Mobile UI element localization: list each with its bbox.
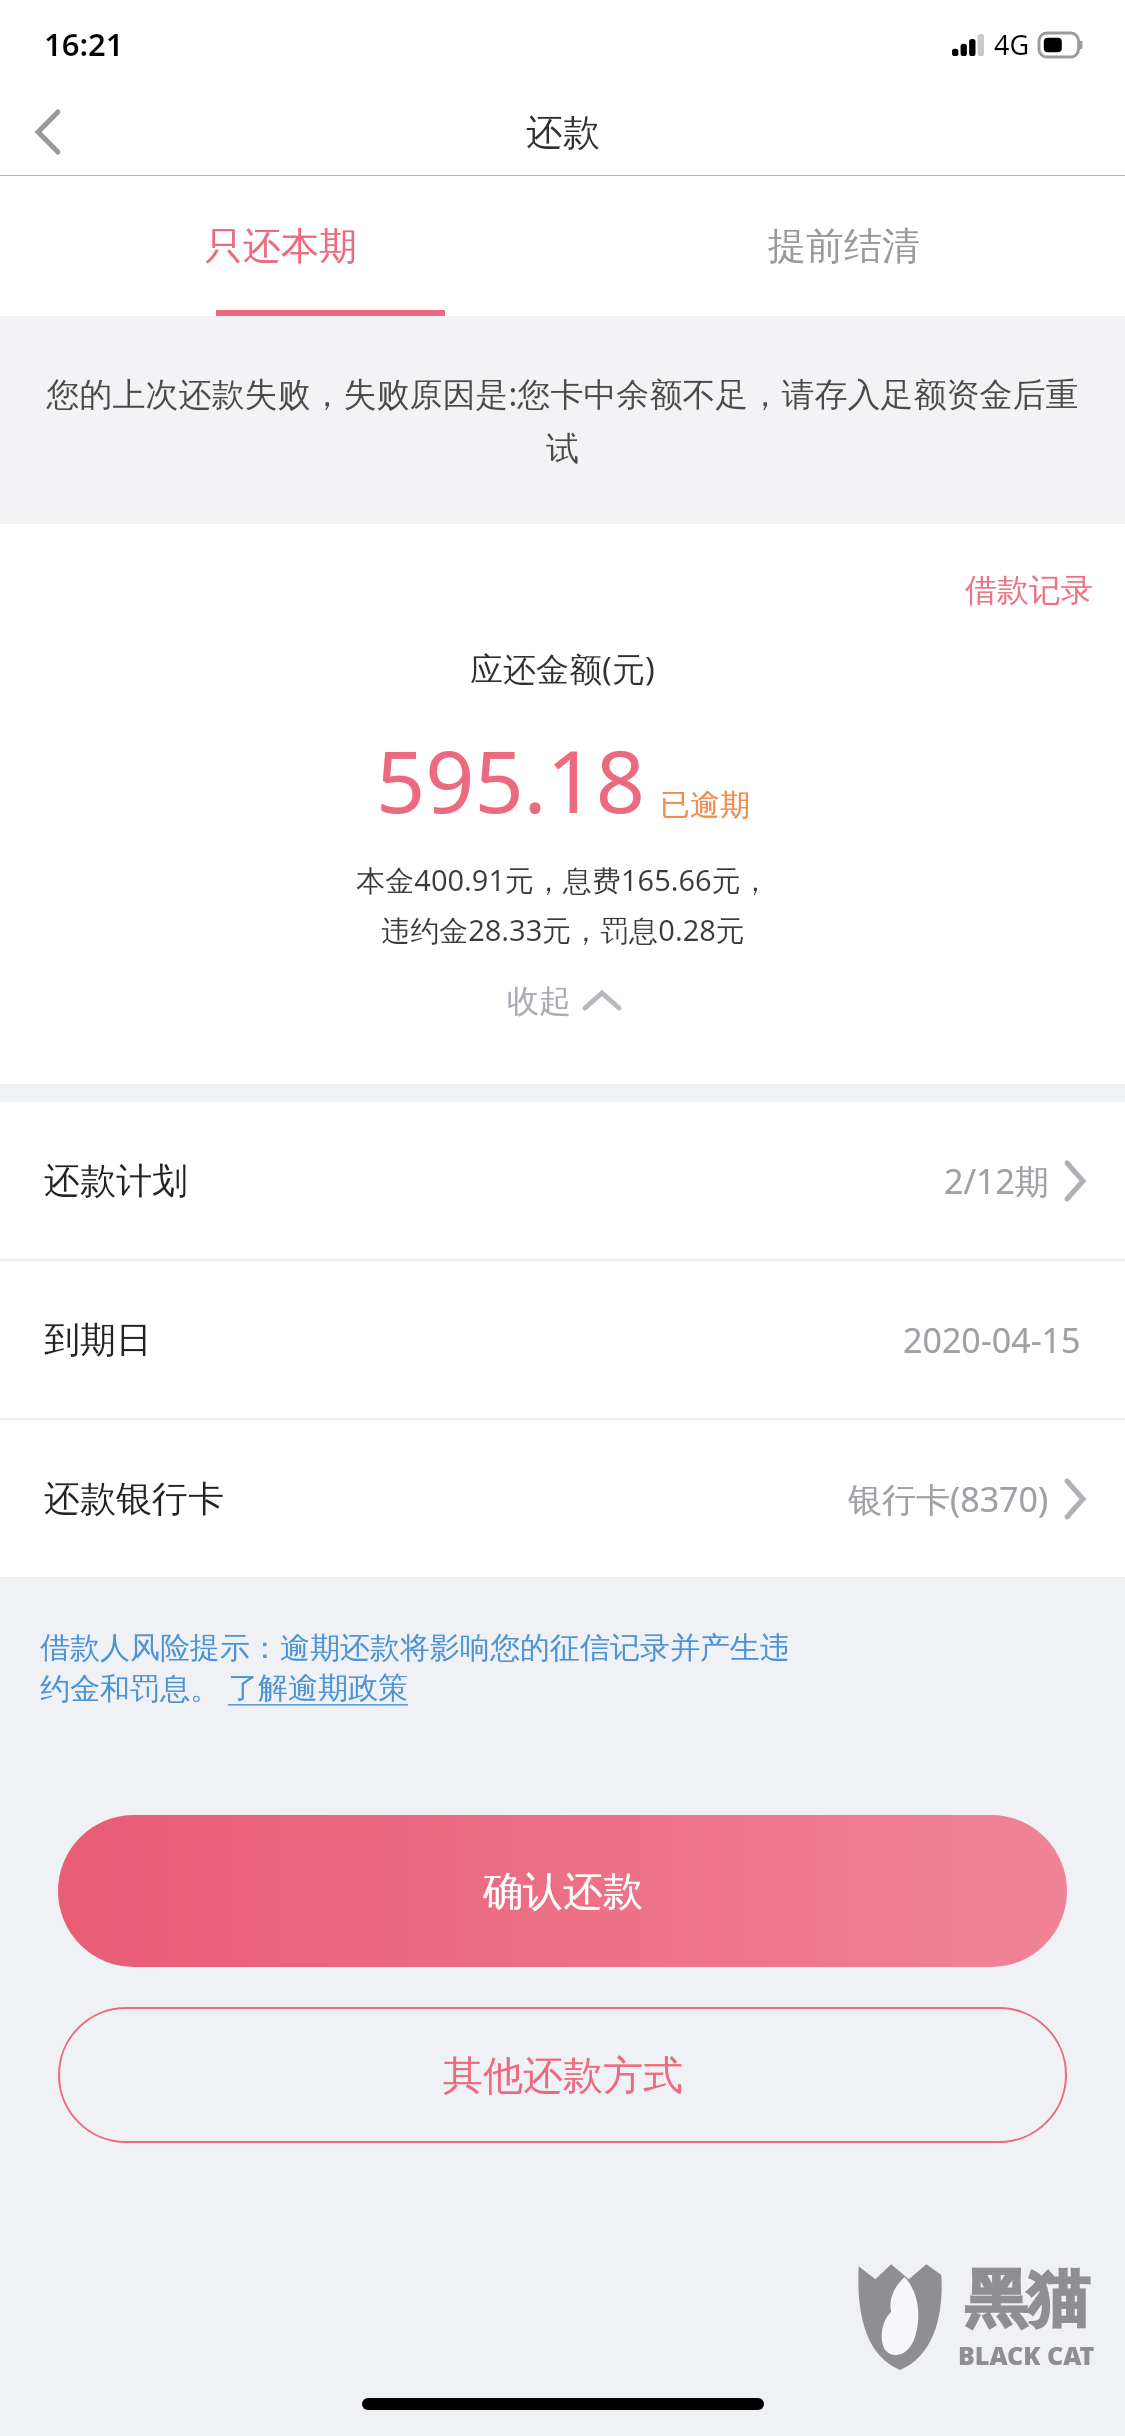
staticText: 已逾期	[660, 786, 750, 824]
staticText: 只还本期	[205, 222, 357, 270]
button[interactable]: 还款银行卡	[0, 1420, 1125, 1577]
staticText: 确认还款	[483, 1866, 643, 1916]
button[interactable]: 还款计划	[0, 1102, 1125, 1259]
staticText: 借款人风险提示：逾期还款将影响您的征信记录并产生违	[40, 1629, 790, 1667]
staticText: 其他还款方式	[443, 2050, 683, 2100]
staticText: 黑猫	[965, 2260, 1089, 2338]
button[interactable]: 了解逾期政策	[228, 1669, 408, 1707]
staticText: 16:21	[44, 23, 124, 65]
staticText: 2/12期	[944, 1158, 1049, 1204]
staticText: 了解逾期政策	[228, 1669, 408, 1707]
staticText: 还款计划	[44, 1158, 188, 1203]
button[interactable]: 提前结清	[562, 176, 1125, 316]
staticText: 2020-04-15	[903, 1317, 1081, 1363]
button[interactable]: 借款记录	[933, 562, 1125, 618]
staticText: 约金和罚息。	[40, 1667, 228, 1708]
staticText: 银行卡(8370)	[848, 1476, 1049, 1522]
staticText: 应还金额(元)	[470, 646, 655, 691]
staticText: 到期日	[44, 1317, 152, 1362]
staticText: 4G	[994, 26, 1030, 63]
button[interactable]: 其他还款方式	[58, 2007, 1067, 2143]
staticText: 提前结清	[768, 222, 920, 270]
staticText: BLACK CAT	[958, 2338, 1095, 2372]
staticText: 您的上次还款失败，失败原因是:您卡中余额不足，请存入足额资金后重试	[40, 371, 1085, 470]
staticText: 收起	[507, 981, 571, 1021]
staticText: 还款	[526, 109, 600, 156]
staticText: 借款记录	[965, 570, 1093, 610]
staticText: 本金400.91元，息费165.66元， 违约金28.33元，罚息0.28元	[356, 860, 770, 949]
button[interactable]: 只还本期	[0, 176, 562, 316]
staticText: 还款银行卡	[44, 1476, 224, 1521]
button[interactable]: 确认还款	[58, 1815, 1067, 1967]
button[interactable]: Back	[0, 88, 96, 176]
staticText: 595.18	[376, 721, 646, 838]
button[interactable]: 收起	[487, 975, 639, 1027]
